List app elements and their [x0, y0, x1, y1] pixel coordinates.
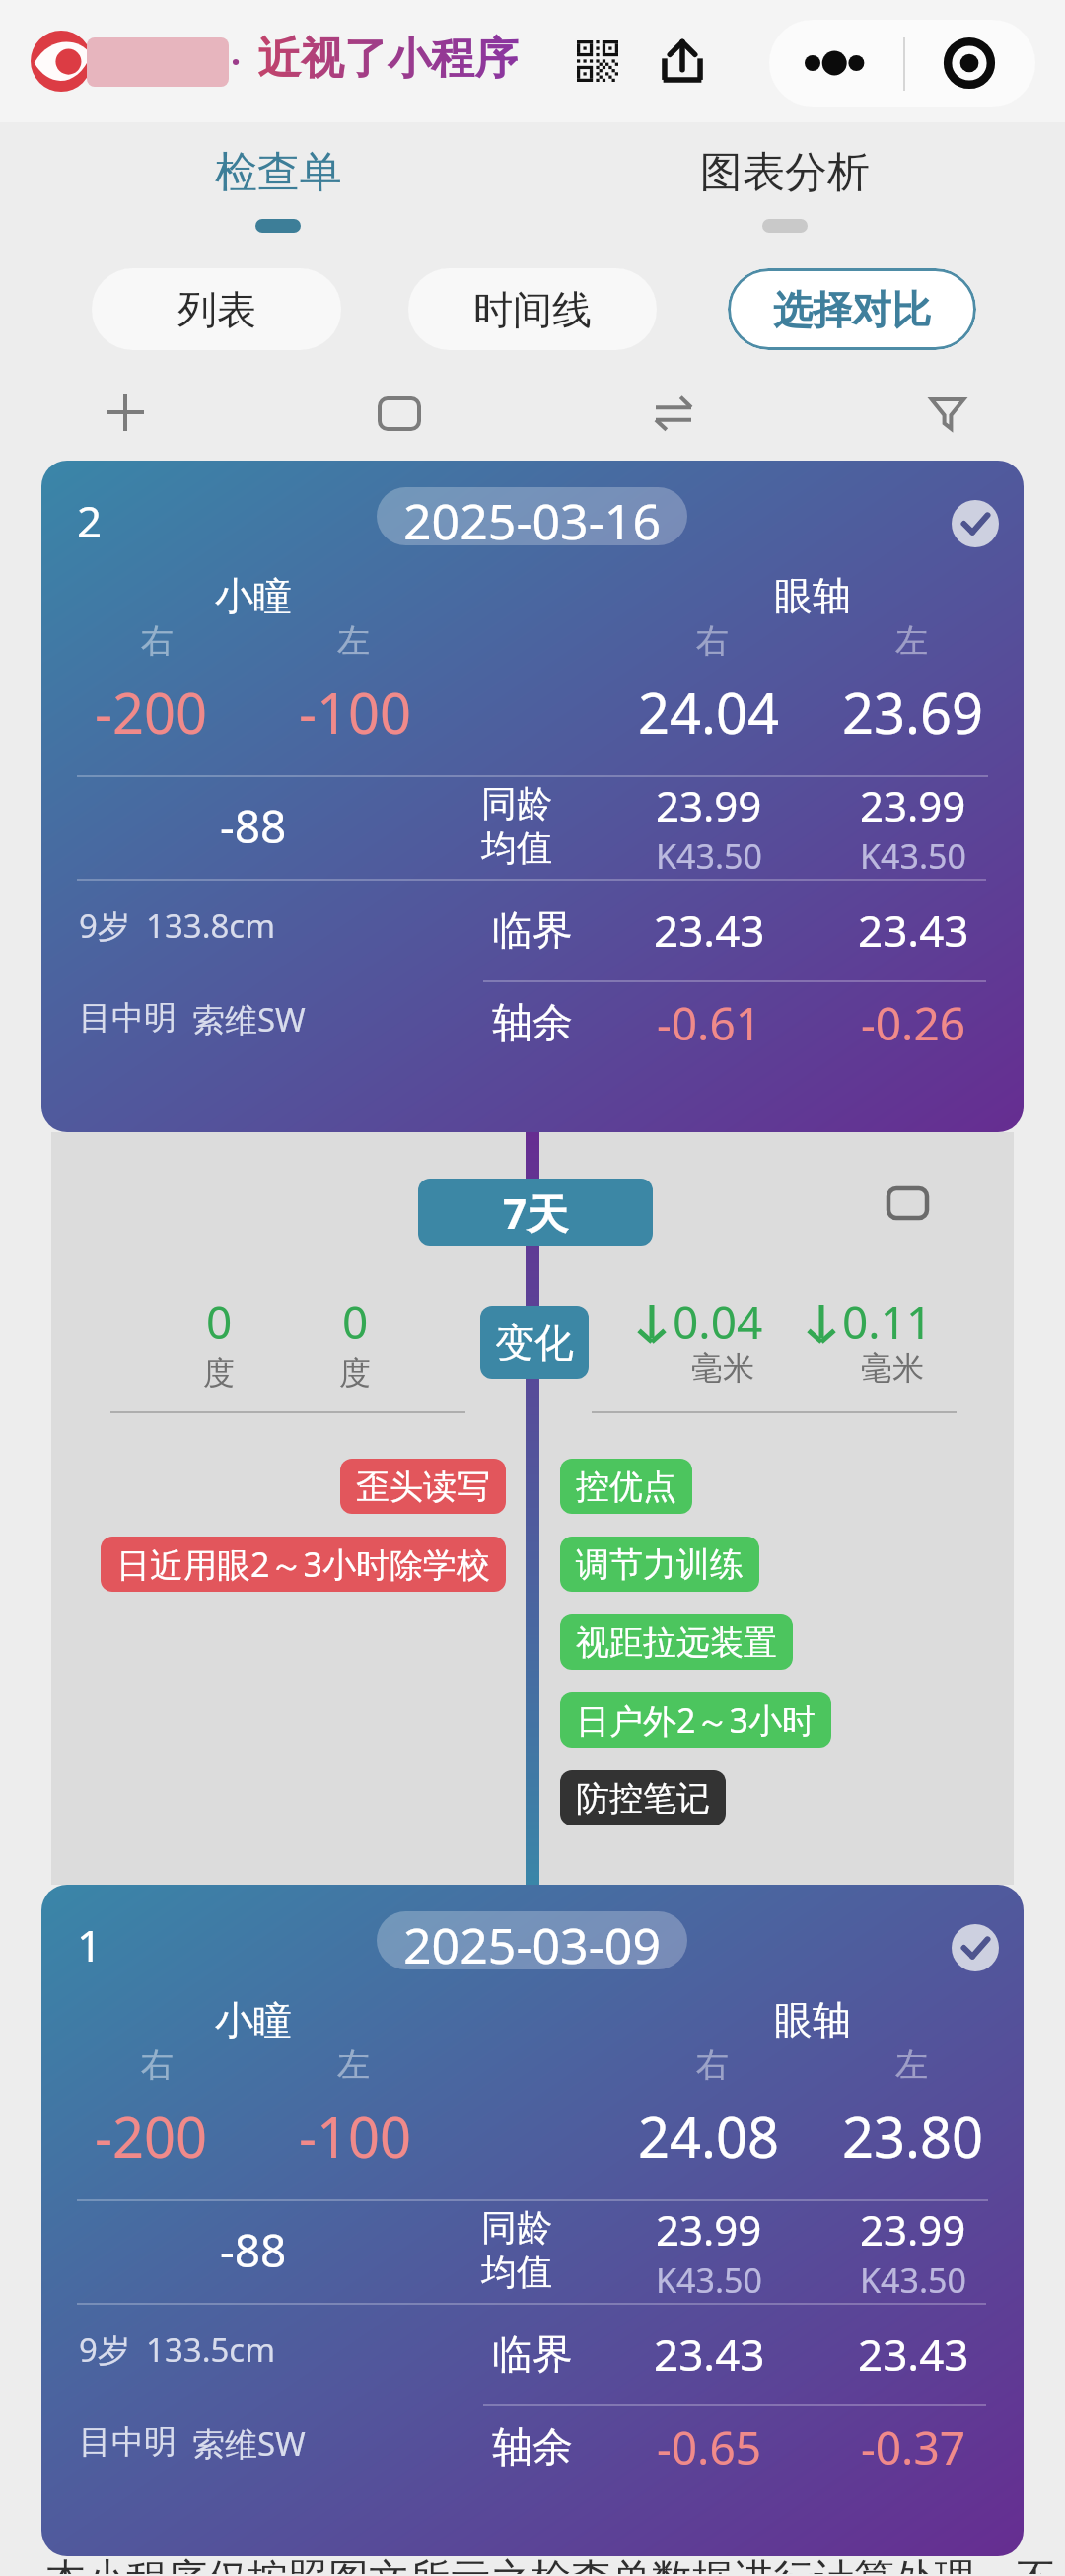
- staticText: 目中明: [79, 997, 177, 1038]
- button[interactable]: 1: [41, 1885, 1024, 2556]
- button[interactable]: Swap order: [604, 369, 743, 458]
- staticText: 23.99: [656, 2201, 762, 2257]
- staticText: 毫米: [861, 1348, 924, 1388]
- staticText: 索维SW: [192, 997, 306, 1041]
- button[interactable]: 日户外2～3小时: [560, 1692, 831, 1748]
- staticText: 23.99: [656, 777, 762, 833]
- staticText: 23.69: [842, 675, 984, 750]
- staticText: -200: [95, 675, 208, 750]
- staticText: -100: [299, 2099, 412, 2174]
- other: Select comparison: [888, 1188, 927, 1218]
- staticText: 本小程序仅按照图文所示之检查单数据进行计算处理，不提供: [45, 2554, 1065, 2574]
- staticText: 0: [206, 1291, 233, 1353]
- staticText: 眼轴: [774, 1996, 851, 2044]
- staticText: 23.43: [858, 900, 969, 960]
- button[interactable]: 变化: [480, 1306, 589, 1379]
- staticText: 1: [77, 1915, 103, 1974]
- staticText: 选择对比: [773, 285, 931, 334]
- staticText: -200: [95, 2099, 208, 2174]
- staticText: 轴余: [492, 2422, 573, 2473]
- staticText: 日近用眼2～3小时除学校: [116, 1541, 490, 1587]
- staticText: -0.26: [861, 992, 966, 1054]
- button[interactable]: 防控笔记: [560, 1770, 726, 1825]
- button[interactable]: 列表: [92, 268, 341, 350]
- staticText: -0.65: [657, 2416, 762, 2478]
- button[interactable]: QR code: [548, 16, 647, 107]
- staticText: 同龄: [481, 2205, 552, 2250]
- button[interactable]: 时间线: [408, 268, 657, 350]
- button[interactable]: Add record: [56, 368, 194, 457]
- staticText: 图表分析: [700, 146, 870, 199]
- button[interactable]: 图表分析: [617, 122, 953, 246]
- staticText: 右: [141, 620, 174, 662]
- staticText: 近视了小程序: [257, 32, 518, 86]
- staticText: 23.99: [860, 777, 966, 833]
- staticText: 2025-03-09: [403, 1911, 661, 1969]
- button[interactable]: Close mini program: [902, 20, 1035, 107]
- staticText: 控优点: [576, 1466, 676, 1508]
- button[interactable]: 7天: [418, 1179, 653, 1246]
- staticText: 右: [141, 2044, 174, 2086]
- staticText: 临界: [492, 905, 573, 957]
- staticText: 临界: [492, 2329, 573, 2381]
- staticText: 索维SW: [192, 2421, 306, 2466]
- staticText: 23.80: [842, 2099, 984, 2174]
- staticText: 小瞳: [215, 1996, 292, 2044]
- button[interactable]: 日近用眼2～3小时除学校: [101, 1537, 506, 1592]
- staticText: 度: [339, 1353, 371, 1393]
- staticText: 日户外2～3小时: [576, 1697, 816, 1743]
- staticText: K43.50: [656, 833, 762, 879]
- staticText: K43.50: [656, 2257, 762, 2303]
- staticText: 左: [895, 620, 928, 662]
- staticText: 同龄: [481, 781, 552, 825]
- button[interactable]: 视距拉远装置: [560, 1614, 793, 1670]
- staticText: 133.8cm: [146, 903, 276, 948]
- staticText: 9岁: [79, 2327, 130, 2372]
- staticText: 9岁: [79, 903, 130, 948]
- staticText: 24.04: [638, 675, 780, 750]
- button[interactable]: 选择对比: [728, 268, 976, 350]
- staticText: 133.5cm: [146, 2327, 276, 2372]
- button[interactable]: Share: [633, 16, 732, 107]
- staticText: 度: [203, 1353, 235, 1393]
- staticText: 24.08: [638, 2099, 780, 2174]
- staticText: K43.50: [860, 2257, 966, 2303]
- staticText: 视距拉远装置: [576, 1621, 777, 1664]
- staticText: -100: [299, 675, 412, 750]
- staticText: 均值: [481, 825, 552, 870]
- staticText: 0.11: [842, 1291, 933, 1353]
- button[interactable]: More options: [769, 20, 902, 107]
- staticText: K43.50: [860, 833, 966, 879]
- staticText: 调节力训练: [576, 1543, 744, 1586]
- staticText: 歪头读写: [356, 1466, 490, 1508]
- button[interactable]: 2: [41, 461, 1024, 1132]
- staticText: 7天: [503, 1184, 569, 1241]
- button[interactable]: 调节力训练: [560, 1537, 759, 1592]
- staticText: ·: [231, 37, 242, 86]
- other: Selected: [952, 1924, 999, 1971]
- staticText: 轴余: [492, 998, 573, 1049]
- staticText: 2025-03-16: [403, 487, 661, 545]
- staticText: 均值: [481, 2250, 552, 2294]
- staticText: -0.61: [657, 992, 762, 1054]
- staticText: 时间线: [473, 285, 592, 334]
- staticText: 毫米: [691, 1348, 754, 1388]
- staticText: 眼轴: [774, 572, 851, 620]
- staticText: 0: [342, 1291, 369, 1353]
- staticText: 左: [337, 620, 370, 662]
- staticText: 变化: [495, 1318, 574, 1367]
- staticText: -88: [220, 795, 287, 857]
- staticText: 23.99: [860, 2201, 966, 2257]
- staticText: 0.04: [673, 1291, 763, 1353]
- staticText: 2: [77, 491, 103, 550]
- staticText: 小瞳: [215, 572, 292, 620]
- other: Selected: [952, 500, 999, 547]
- staticText: 右: [696, 2044, 729, 2086]
- button[interactable]: 歪头读写: [340, 1459, 506, 1514]
- button[interactable]: 检查单: [110, 122, 446, 246]
- button[interactable]: 控优点: [560, 1459, 692, 1514]
- button[interactable]: Filter: [879, 369, 1017, 458]
- staticText: -88: [220, 2219, 287, 2281]
- button[interactable]: Select all: [330, 369, 468, 458]
- staticText: 防控笔记: [576, 1777, 710, 1820]
